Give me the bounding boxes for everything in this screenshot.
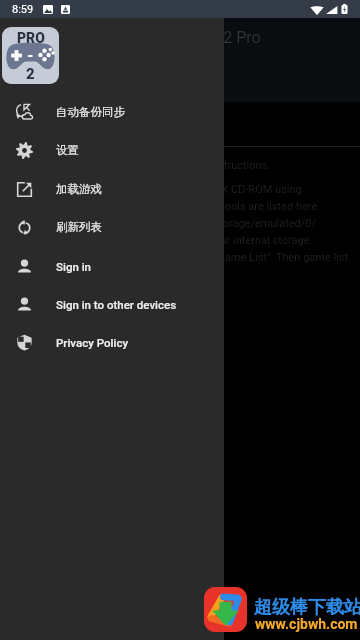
staticText: Sign in bbox=[56, 260, 92, 273]
other: Privacy Policy bbox=[16, 334, 33, 351]
staticText: Privacy Policy bbox=[56, 336, 129, 349]
staticText: 1) Dump your own PSX CD-ROM using a PC. … bbox=[116, 183, 349, 281]
button[interactable]: Load game bbox=[0, 170, 224, 208]
other: Account bbox=[16, 296, 33, 313]
button[interactable]: App icon bbox=[2, 27, 59, 84]
staticText: Sign in to other devices bbox=[56, 298, 177, 311]
other: Settings bbox=[16, 142, 33, 159]
button[interactable]: Refresh list bbox=[0, 208, 224, 246]
other: Auto backup sync bbox=[16, 104, 33, 121]
other: Account bbox=[16, 258, 33, 275]
staticText: FPse for Android 2 Pro bbox=[100, 28, 261, 47]
staticText: 自动备份同步 bbox=[56, 105, 125, 119]
staticText: 加载游戏 bbox=[56, 182, 102, 196]
button[interactable]: Settings bbox=[0, 131, 224, 169]
button[interactable]: Account bbox=[0, 247, 224, 285]
button[interactable]: Auto backup sync bbox=[0, 93, 224, 131]
staticText: 超级棒下载站 bbox=[254, 596, 360, 619]
staticText: PRO bbox=[17, 30, 45, 46]
staticText: 设置 bbox=[56, 143, 79, 157]
other: Load game bbox=[16, 181, 33, 198]
other: Refresh list bbox=[16, 219, 33, 236]
button[interactable]: Account bbox=[0, 285, 224, 323]
staticText: Read the following instructions. bbox=[116, 159, 271, 172]
button[interactable]: Privacy Policy bbox=[0, 323, 224, 361]
staticText: www.cjbwh.com bbox=[255, 616, 358, 632]
staticText: 刷新列表 bbox=[56, 220, 102, 234]
staticText: 2 bbox=[26, 65, 35, 83]
staticText: 8:59 bbox=[12, 3, 34, 16]
